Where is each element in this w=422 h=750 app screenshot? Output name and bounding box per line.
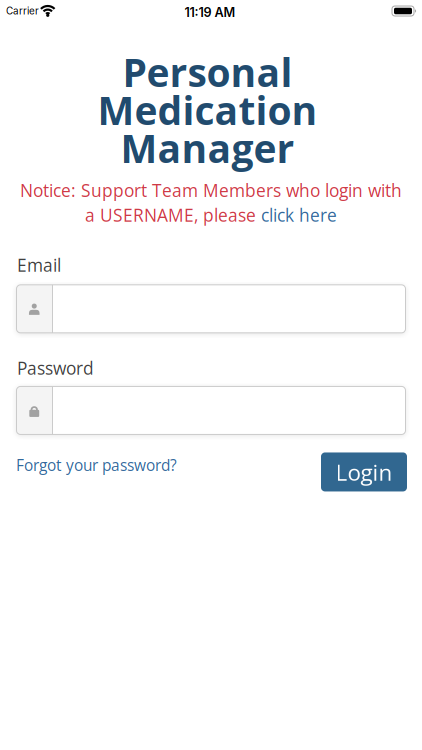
staticText: Forgot your password? [16, 454, 177, 476]
staticText: Medication [97, 83, 317, 136]
staticText: click here [261, 203, 337, 227]
button[interactable]: Forgot your password? [16, 454, 177, 476]
staticText: Password [17, 356, 94, 380]
staticText: Login [335, 457, 392, 487]
staticText: Carrier [6, 5, 39, 17]
staticText: Manager [120, 121, 294, 174]
staticText: Personal [122, 45, 292, 98]
button[interactable]: Password [16, 386, 405, 434]
button[interactable]: click here [261, 203, 337, 227]
staticText: a USERNAME, please [85, 203, 261, 227]
staticText: Email [17, 253, 61, 277]
button[interactable]: Email [16, 285, 405, 333]
button[interactable]: Login [321, 452, 407, 491]
staticText: 11:19 AM [184, 5, 235, 20]
staticText: Notice: Support Team Members who login w… [20, 178, 402, 202]
